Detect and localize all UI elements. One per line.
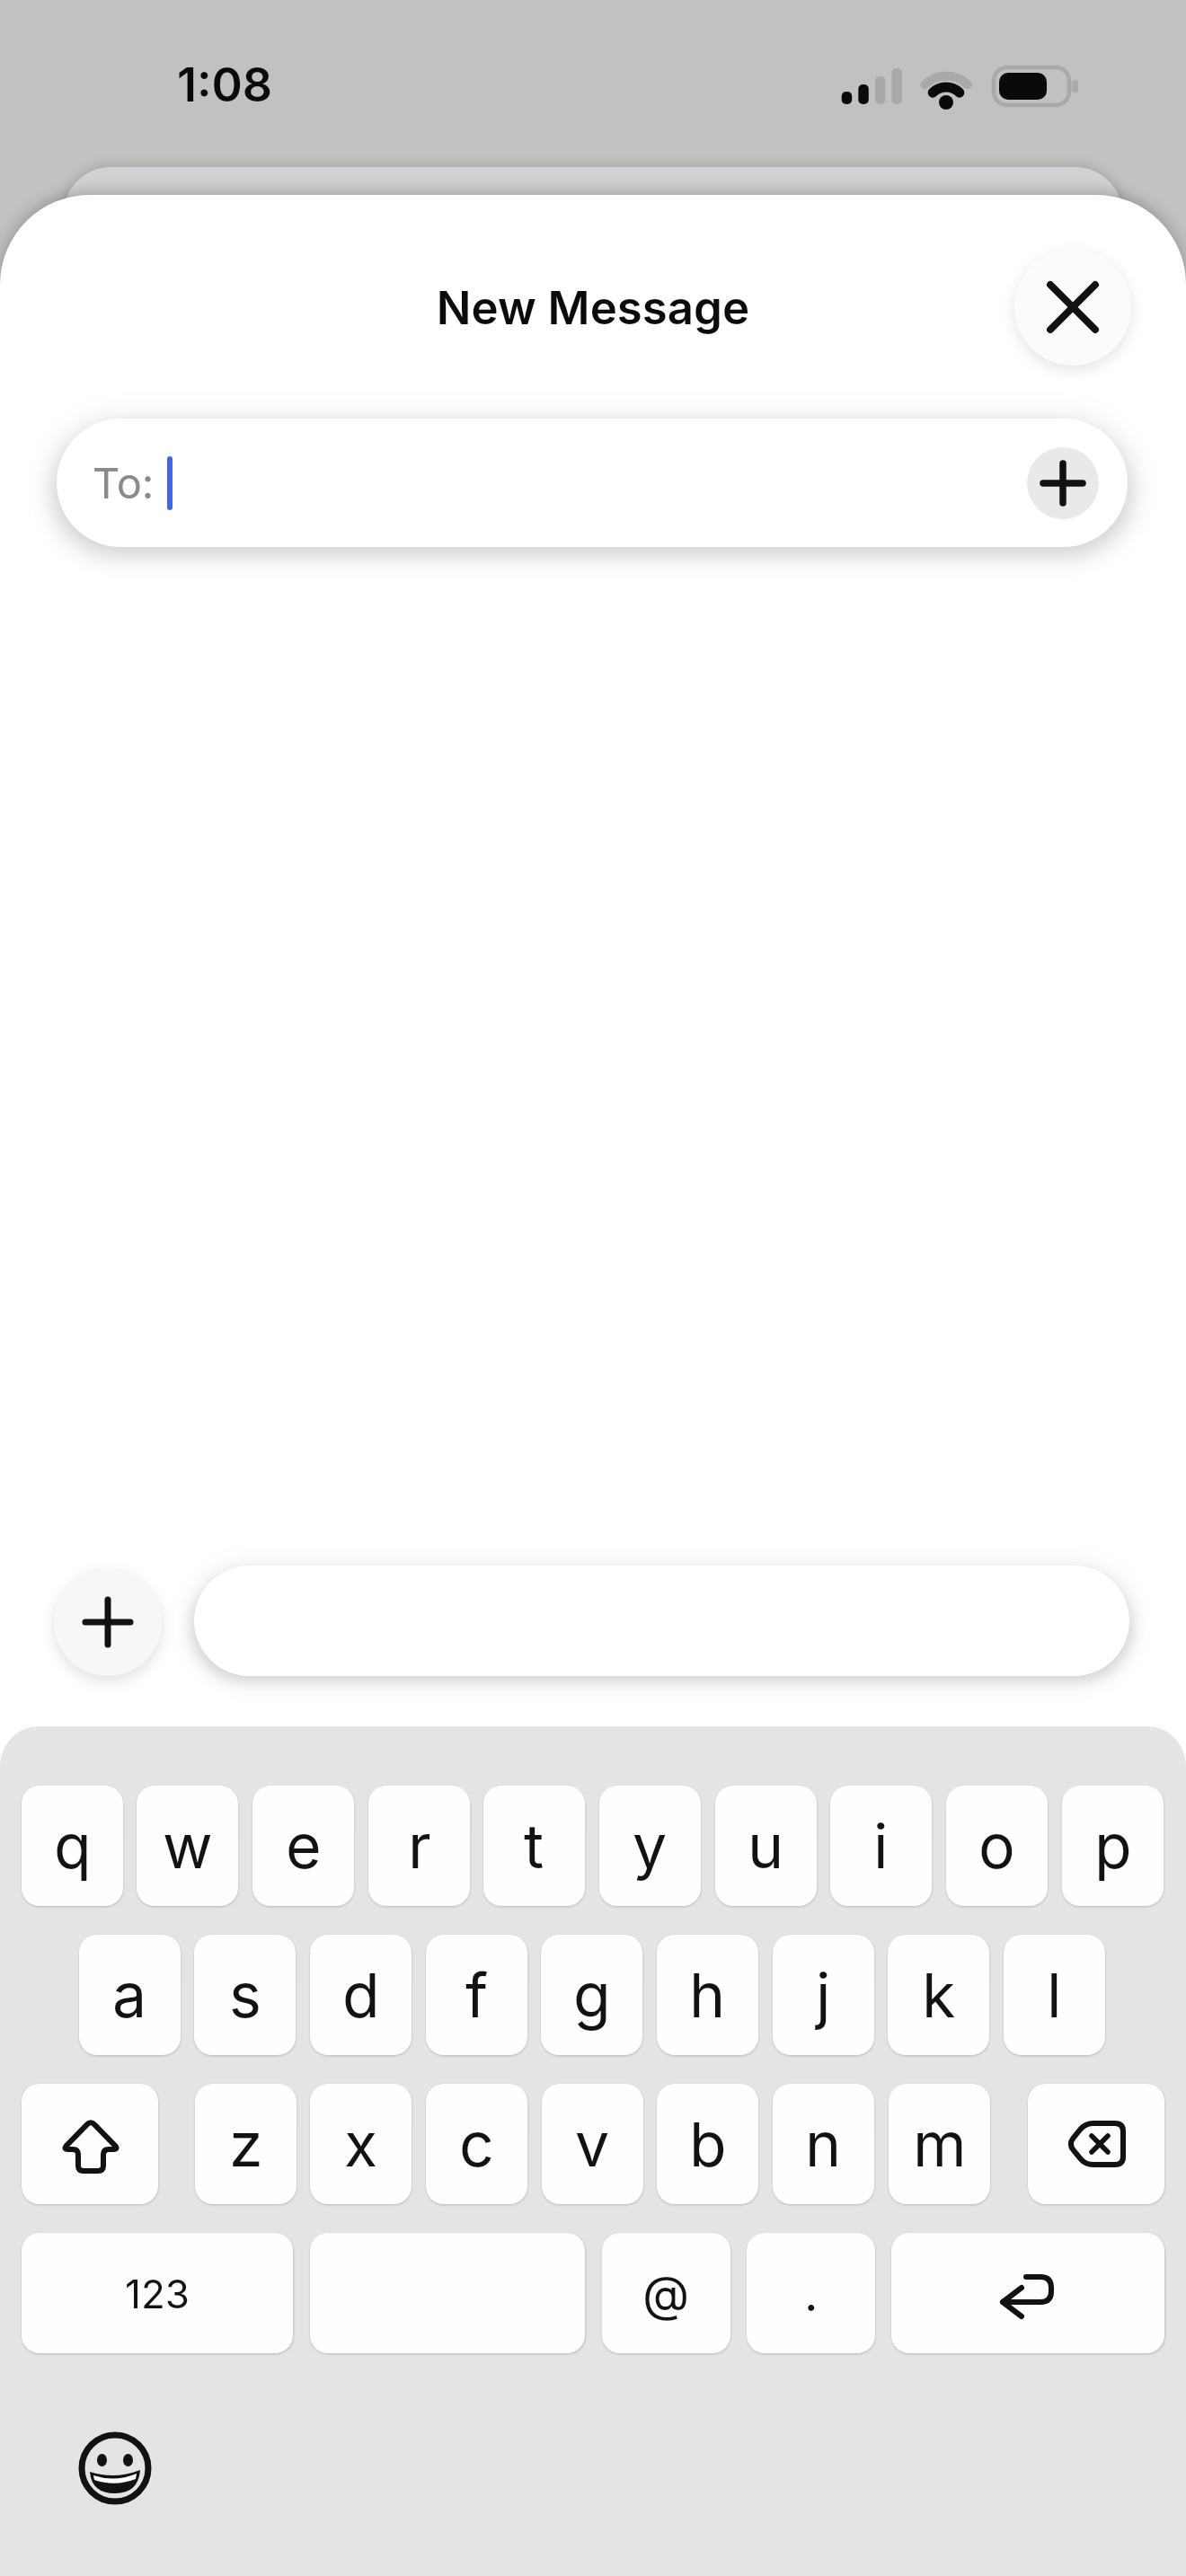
staticText: c <box>459 2107 494 2181</box>
button[interactable]: v <box>542 2084 643 2204</box>
staticText: i <box>873 1809 889 1883</box>
button[interactable] <box>891 2233 1164 2353</box>
staticText: j <box>816 1958 831 2032</box>
button[interactable]: n <box>773 2084 874 2204</box>
button[interactable]: g <box>541 1935 642 2055</box>
button[interactable]: 123 <box>22 2233 293 2353</box>
staticText: . <box>804 2264 819 2323</box>
button[interactable]: p <box>1062 1786 1164 1906</box>
button[interactable]: r <box>368 1786 470 1906</box>
button[interactable]: i <box>830 1786 932 1906</box>
staticText: m <box>913 2107 967 2181</box>
staticText: 123 <box>125 2270 190 2317</box>
staticText: o <box>978 1809 1015 1883</box>
button[interactable] <box>1028 2084 1164 2204</box>
staticText: e <box>286 1809 322 1883</box>
button[interactable]: h <box>657 1935 758 2055</box>
staticText: r <box>408 1809 431 1883</box>
button[interactable]: c <box>426 2084 527 2204</box>
button[interactable]: t <box>483 1786 585 1906</box>
staticText: u <box>748 1809 784 1883</box>
staticText: v <box>575 2107 610 2181</box>
button[interactable]: o <box>946 1786 1048 1906</box>
staticText: h <box>689 1958 726 2032</box>
staticText: t <box>524 1809 544 1883</box>
button[interactable]: z <box>195 2084 296 2204</box>
staticText: g <box>573 1958 611 2032</box>
staticText: x <box>344 2107 378 2181</box>
button[interactable]: w <box>137 1786 238 1906</box>
button[interactable]: b <box>657 2084 758 2204</box>
staticText: b <box>689 2107 727 2181</box>
button[interactable]: q <box>22 1786 123 1906</box>
button[interactable]: @ <box>602 2233 730 2353</box>
button[interactable]: To: <box>57 419 1128 547</box>
staticText: k <box>922 1958 956 2032</box>
staticText: n <box>805 2107 842 2181</box>
staticText: p <box>1094 1809 1132 1883</box>
button[interactable]: . <box>747 2233 875 2353</box>
staticText: a <box>112 1958 147 2032</box>
button[interactable] <box>54 1568 162 1676</box>
button[interactable]: f <box>426 1935 527 2055</box>
button[interactable] <box>77 2430 153 2506</box>
staticText: d <box>342 1958 380 2032</box>
staticText: f <box>465 1958 489 2032</box>
staticText: z <box>229 2107 263 2181</box>
button[interactable]: x <box>310 2084 412 2204</box>
staticText: 1:08 <box>177 57 273 113</box>
staticText: New Message <box>0 280 1186 336</box>
button[interactable]: k <box>888 1935 989 2055</box>
staticText: l <box>1047 1958 1062 2032</box>
button[interactable] <box>1014 249 1131 366</box>
button[interactable]: d <box>310 1935 412 2055</box>
button[interactable] <box>22 2084 158 2204</box>
staticText: To: <box>93 457 155 508</box>
button[interactable]: u <box>715 1786 817 1906</box>
staticText: y <box>633 1809 668 1883</box>
button[interactable]: e <box>252 1786 354 1906</box>
staticText: s <box>229 1958 261 2032</box>
button[interactable]: s <box>194 1935 296 2055</box>
button[interactable]: y <box>599 1786 701 1906</box>
button[interactable]: l <box>1004 1935 1105 2055</box>
button[interactable]: a <box>79 1935 181 2055</box>
staticText: q <box>54 1809 92 1883</box>
staticText: @ <box>642 2264 690 2323</box>
staticText: w <box>163 1809 213 1883</box>
button[interactable]: j <box>773 1935 874 2055</box>
button[interactable] <box>1027 447 1099 519</box>
button[interactable]: m <box>889 2084 990 2204</box>
